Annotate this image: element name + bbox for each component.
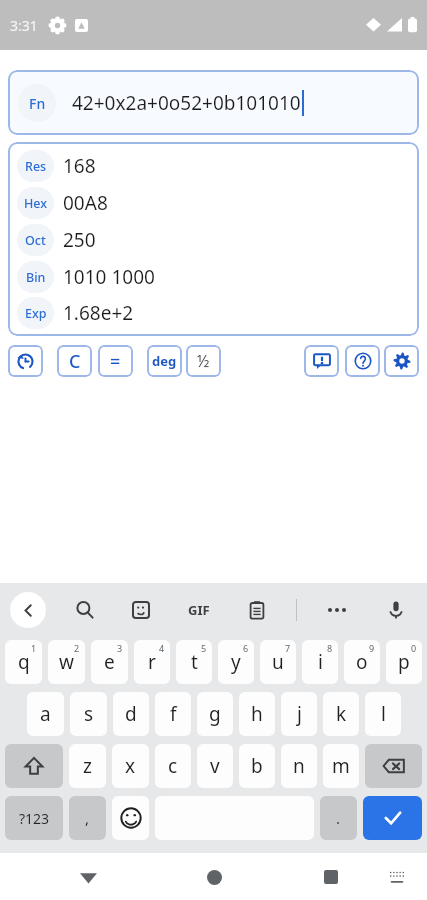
button[interactable]: s: [70, 692, 107, 736]
button[interactable]: Shift: [5, 744, 63, 788]
staticText: o: [356, 649, 368, 675]
staticText: Hex: [24, 195, 48, 212]
staticText: 1010 1000: [63, 264, 155, 290]
button[interactable]: Clear: [57, 345, 92, 377]
button[interactable]: w: [48, 640, 85, 684]
button[interactable]: l: [365, 692, 401, 736]
staticText: 9: [369, 642, 375, 654]
staticText: 42+0x2a+0o52+0b101010: [72, 90, 301, 116]
button[interactable]: o: [344, 640, 380, 684]
staticText: 0: [411, 642, 417, 654]
button[interactable]: Bin: [8, 258, 419, 295]
button[interactable]: h: [239, 692, 275, 736]
staticText: a: [40, 701, 51, 727]
button[interactable]: Res: [8, 147, 419, 184]
button[interactable]: d: [113, 692, 149, 736]
button[interactable]: t: [176, 640, 212, 684]
staticText: 6: [243, 642, 249, 654]
button[interactable]: v: [197, 744, 233, 788]
button[interactable]: Clipboard: [240, 593, 274, 627]
staticText: d: [125, 701, 137, 727]
staticText: m: [332, 753, 350, 779]
button[interactable]: Recents: [313, 859, 349, 895]
button[interactable]: q: [5, 640, 42, 684]
button[interactable]: Fn: [8, 70, 419, 135]
button[interactable]: Symbols: [5, 796, 63, 840]
staticText: n: [293, 753, 305, 779]
button[interactable]: e: [91, 640, 128, 684]
button[interactable]: History: [8, 345, 43, 377]
button[interactable]: Voice input: [379, 593, 413, 627]
staticText: 168: [63, 153, 96, 179]
button[interactable]: a: [27, 692, 64, 736]
button[interactable]: Emoji: [112, 796, 149, 840]
staticText: y: [231, 649, 241, 675]
staticText: Exp: [25, 305, 47, 322]
staticText: i: [318, 649, 323, 675]
button[interactable]: z: [69, 744, 106, 788]
button[interactable]: Exp: [8, 295, 419, 331]
button[interactable]: Degrees: [147, 345, 182, 377]
staticText: k: [336, 701, 347, 727]
button[interactable]: Switch keyboard: [381, 861, 413, 893]
staticText: Bin: [26, 269, 46, 286]
staticText: j: [297, 701, 302, 727]
button[interactable]: Equals: [98, 345, 133, 377]
staticText: Fn: [29, 94, 46, 113]
staticText: 5: [201, 642, 207, 654]
staticText: s: [84, 701, 94, 727]
button[interactable]: Help: [345, 345, 380, 377]
staticText: h: [251, 701, 263, 727]
staticText: GIF: [188, 601, 210, 619]
staticText: 7: [285, 642, 291, 654]
button[interactable]: Fn: [18, 84, 56, 122]
staticText: ,: [85, 808, 90, 828]
button[interactable]: More options: [320, 593, 354, 627]
button[interactable]: u: [260, 640, 296, 684]
button[interactable]: Home: [196, 859, 232, 895]
button[interactable]: p: [386, 640, 422, 684]
staticText: f: [170, 701, 177, 727]
button[interactable]: Back: [70, 859, 106, 895]
button[interactable]: f: [155, 692, 191, 736]
button[interactable]: n: [281, 744, 317, 788]
button[interactable]: j: [281, 692, 317, 736]
staticText: 1: [31, 642, 37, 654]
staticText: b: [251, 753, 263, 779]
staticText: v: [210, 753, 220, 779]
button[interactable]: Period: [320, 796, 357, 840]
staticText: e: [104, 649, 115, 675]
staticText: Res: [25, 158, 47, 175]
button[interactable]: m: [323, 744, 359, 788]
button[interactable]: Oct: [8, 221, 419, 258]
staticText: 00A8: [63, 190, 108, 216]
button[interactable]: y: [218, 640, 254, 684]
staticText: .: [336, 808, 341, 828]
button[interactable]: i: [302, 640, 338, 684]
staticText: z: [83, 753, 92, 779]
button[interactable]: Hex: [8, 184, 419, 221]
button[interactable]: g: [197, 692, 233, 736]
button[interactable]: r: [134, 640, 170, 684]
button[interactable]: b: [239, 744, 275, 788]
button[interactable]: c: [155, 744, 191, 788]
button[interactable]: Stickers: [124, 593, 158, 627]
button[interactable]: Comma: [69, 796, 106, 840]
button[interactable]: Feedback: [304, 345, 339, 377]
button[interactable]: Backspace: [365, 744, 422, 788]
staticText: w: [59, 649, 74, 675]
staticText: p: [398, 649, 410, 675]
button[interactable]: Settings: [384, 345, 419, 377]
button[interactable]: x: [112, 744, 149, 788]
staticText: c: [168, 753, 178, 779]
button[interactable]: Search: [68, 593, 102, 627]
button[interactable]: k: [323, 692, 359, 736]
staticText: l: [381, 701, 386, 727]
staticText: t: [191, 649, 198, 675]
staticText: 250: [63, 227, 96, 253]
button[interactable]: GIF: [180, 591, 218, 629]
button[interactable]: Enter: [363, 796, 422, 840]
button[interactable]: Fraction: [186, 345, 221, 377]
button[interactable]: Back: [10, 592, 46, 628]
